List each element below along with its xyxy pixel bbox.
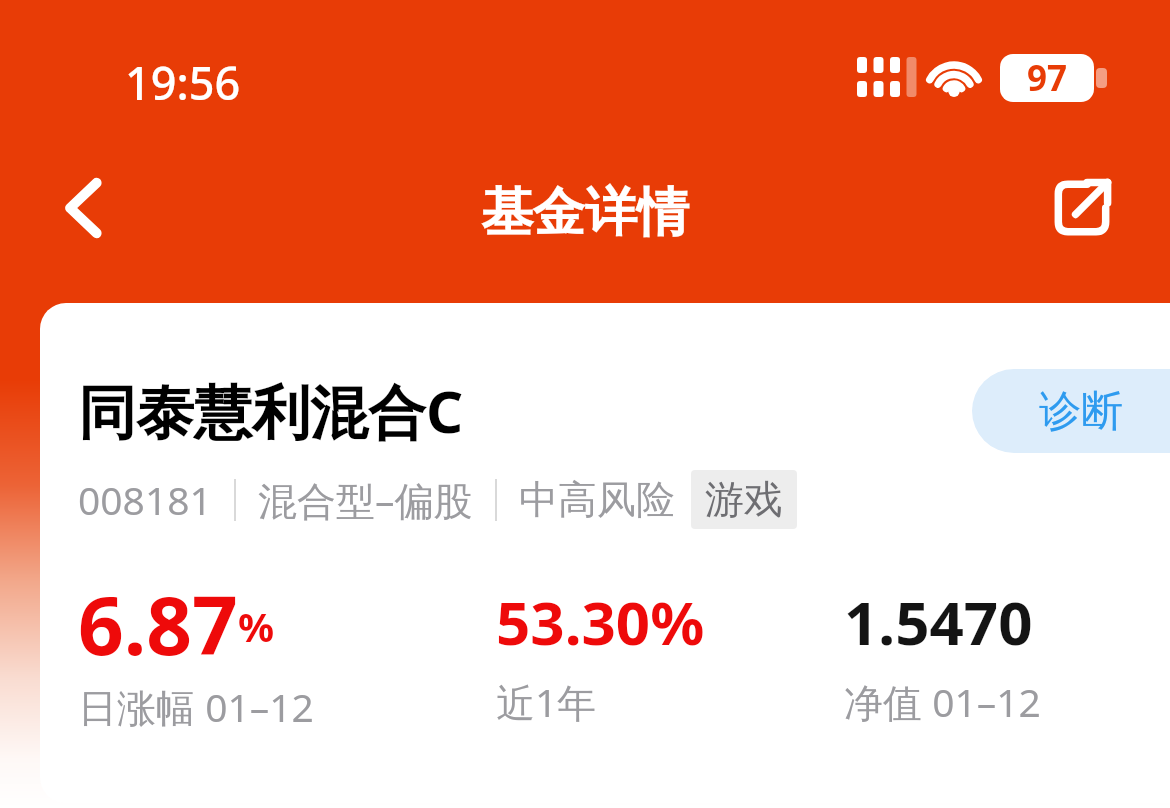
staticText: 混合型–偏股: [258, 473, 473, 526]
staticText: 诊断: [1039, 385, 1123, 438]
button[interactable]: Back: [38, 166, 128, 250]
staticText: 19:56: [125, 52, 241, 113]
staticText: 游戏: [705, 475, 783, 524]
staticText: 净值 01–12: [844, 675, 1041, 728]
staticText: 97: [1027, 54, 1068, 102]
staticText: 中高风险: [519, 475, 675, 524]
staticText: 基金详情: [0, 180, 1170, 246]
button[interactable]: Share: [1032, 166, 1132, 250]
staticText: 1.5470: [844, 581, 1033, 663]
staticText: 近1年: [496, 675, 597, 728]
staticText: %: [238, 599, 275, 653]
staticText: 6.87: [78, 569, 238, 678]
staticText: 53.30%: [496, 581, 705, 663]
staticText: 008181: [78, 473, 212, 526]
staticText: 日涨幅 01–12: [78, 680, 314, 733]
staticText: 同泰慧利混合C: [78, 371, 464, 450]
button[interactable]: 诊断: [972, 369, 1170, 453]
